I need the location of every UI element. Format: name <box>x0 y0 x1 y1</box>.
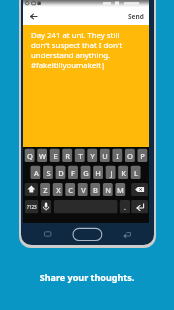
staticText: Y <box>90 151 95 161</box>
staticText: Q <box>27 151 33 161</box>
button[interactable]: O <box>125 149 135 162</box>
staticText: E <box>53 151 58 161</box>
staticText: W <box>39 151 46 161</box>
staticText: N <box>105 185 111 195</box>
button[interactable]: C <box>65 183 75 196</box>
staticText: G <box>83 168 89 178</box>
staticText: K <box>121 168 126 178</box>
button[interactable]: D <box>56 166 66 179</box>
button[interactable]: X <box>53 183 63 196</box>
staticText: ?123 <box>27 204 37 210</box>
button[interactable]: Z <box>40 183 50 196</box>
button[interactable]: S <box>43 166 53 179</box>
button[interactable]: ?123 <box>25 200 38 213</box>
button[interactable]: Back <box>25 8 41 24</box>
staticText: Day 241 at uni. They still don't suspect… <box>31 30 123 70</box>
staticText: L <box>134 168 138 178</box>
button[interactable]: Send <box>123 8 149 25</box>
button[interactable]: K <box>118 166 128 179</box>
staticText: D <box>58 168 64 178</box>
button[interactable]: B <box>90 183 100 196</box>
button[interactable]: L <box>131 166 141 179</box>
staticText: J <box>110 168 113 178</box>
button[interactable]: W <box>37 149 47 162</box>
staticText: Share your thoughts. <box>0 271 174 283</box>
button[interactable]: I <box>112 149 122 162</box>
button[interactable]: N <box>103 183 113 196</box>
button[interactable]: M <box>115 183 125 196</box>
staticText: F <box>71 168 75 178</box>
staticText: B <box>93 185 98 195</box>
button[interactable]: H <box>93 166 103 179</box>
button[interactable]: V <box>78 183 88 196</box>
staticText: S <box>46 168 51 178</box>
staticText: P <box>140 151 145 161</box>
button[interactable]: R <box>62 149 72 162</box>
staticText: M <box>117 185 124 195</box>
staticText: T <box>78 151 83 161</box>
button[interactable]: U <box>100 149 110 162</box>
button[interactable]: Y <box>87 149 97 162</box>
staticText: O <box>127 151 133 161</box>
staticText: Z <box>43 185 48 195</box>
staticText: U <box>102 151 108 161</box>
staticText: Send <box>128 12 144 21</box>
staticText: H <box>95 168 101 178</box>
button[interactable]: F <box>68 166 78 179</box>
button[interactable]: E <box>50 149 60 162</box>
staticText: C <box>68 185 73 195</box>
staticText: R <box>65 151 70 161</box>
button[interactable]: A <box>31 166 41 179</box>
button[interactable]: Q <box>25 149 35 162</box>
staticText: I <box>116 151 119 161</box>
staticText: A <box>34 168 39 178</box>
button[interactable]: J <box>106 166 116 179</box>
staticText: V <box>81 185 86 195</box>
button[interactable]: Day 241 at uni. They still don't suspect… <box>23 25 149 147</box>
button[interactable]: G <box>81 166 91 179</box>
button[interactable]: P <box>137 149 147 162</box>
staticText: X <box>56 185 61 195</box>
button[interactable]: T <box>75 149 85 162</box>
